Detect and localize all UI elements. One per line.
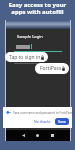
staticText: Save username and password to FortiPass?	[13, 111, 74, 115]
button[interactable]: Tap to sign in	[5, 52, 48, 62]
staticText: Tap to sign in	[9, 54, 41, 61]
other: System navigation	[6, 130, 70, 141]
button[interactable]: FortiPass	[35, 63, 69, 74]
staticText: Sample Login	[17, 34, 43, 39]
staticText: No thanks	[34, 119, 51, 124]
button[interactable]: Home	[35, 133, 40, 138]
button[interactable]: No thanks	[32, 118, 53, 125]
button[interactable]: Recent apps	[50, 133, 55, 138]
staticText: Save	[58, 119, 66, 124]
button[interactable]: Save	[55, 118, 69, 125]
staticText: Easy access to your apps with autofill	[0, 1, 75, 16]
button[interactable]: Back	[21, 133, 26, 138]
staticText: FortiPass	[40, 65, 62, 72]
